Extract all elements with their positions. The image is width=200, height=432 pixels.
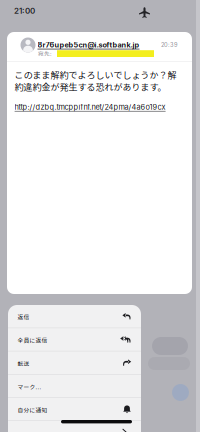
staticText: このまま解約でよろしいでしょうか？解約違約金が発生する恐れがあります。 [15, 68, 177, 93]
staticText: 返信 [17, 313, 29, 321]
button[interactable] [8, 421, 141, 432]
button[interactable]: 自分に通知 [8, 398, 141, 420]
button[interactable]: マーク... [8, 375, 141, 397]
button[interactable]: 返信 [8, 305, 141, 328]
staticText: 20:39 [161, 41, 178, 48]
staticText: 自分に通知 [17, 406, 47, 414]
button[interactable]: 転送 [8, 351, 141, 374]
staticText: 全員に返信 [17, 336, 47, 344]
staticText: 8r76upeb5cn@i.softbank.jp [37, 40, 139, 49]
staticText: http://dzbq.tmcppifnf.net/24pma/4a6o19cx [15, 102, 166, 111]
button[interactable]: 全員に返信 [8, 328, 141, 351]
staticText: 転送 [17, 359, 29, 368]
staticText: マーク... [17, 383, 41, 391]
staticText: 宛先: [38, 50, 52, 58]
staticText: 21:00 [14, 6, 35, 16]
